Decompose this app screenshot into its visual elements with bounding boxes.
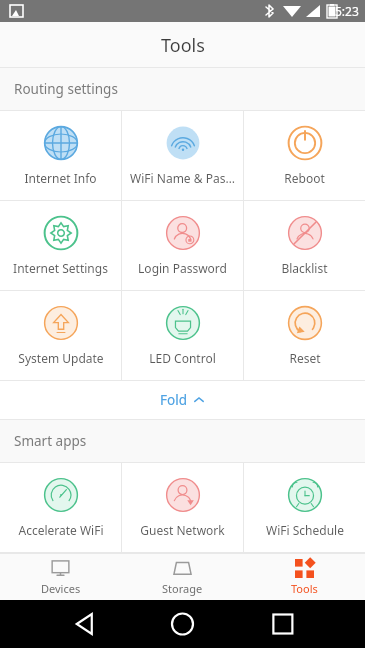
staticText: Devices xyxy=(41,581,81,596)
staticText: Accelerate WiFi xyxy=(18,522,104,538)
staticText: LED Control xyxy=(149,350,216,366)
button[interactable]: WiFi Schedule xyxy=(244,463,365,552)
staticText: Internet Settings xyxy=(13,260,108,276)
staticText: Guest Network xyxy=(140,522,225,538)
button[interactable]: Tools xyxy=(243,554,365,600)
button[interactable]: Reboot xyxy=(244,111,365,200)
button[interactable]: Reset xyxy=(244,291,365,380)
button[interactable]: Storage xyxy=(121,554,243,600)
button[interactable]: Devices xyxy=(0,554,121,600)
staticText: Tools xyxy=(161,33,205,58)
staticText: Internet Info xyxy=(24,170,97,186)
button[interactable]: Login Password xyxy=(122,201,243,290)
staticText: WiFi Schedule xyxy=(266,522,344,538)
staticText: Login Password xyxy=(138,260,227,276)
button[interactable]: Accelerate WiFi xyxy=(0,463,121,552)
staticText: Routing settings xyxy=(14,80,118,98)
button[interactable]: Blacklist xyxy=(244,201,365,290)
staticText: WiFi Name & Pas… xyxy=(130,170,235,186)
button[interactable]: System Update xyxy=(0,291,121,380)
staticText: Reset xyxy=(289,350,321,366)
button[interactable]: Fold xyxy=(0,381,365,419)
staticText: System Update xyxy=(18,350,104,366)
button[interactable]: LED Control xyxy=(122,291,243,380)
button[interactable]: Internet Info xyxy=(0,111,121,200)
button[interactable]: Guest Network xyxy=(122,463,243,552)
button[interactable]: WiFi Name & Pas… xyxy=(122,111,243,200)
button[interactable]: Internet Settings xyxy=(0,201,121,290)
staticText: Tools xyxy=(291,581,318,596)
staticText: 5:23 xyxy=(335,3,359,19)
staticText: Fold xyxy=(160,391,187,409)
staticText: Reboot xyxy=(284,170,325,186)
staticText: Storage xyxy=(162,581,203,596)
staticText: Smart apps xyxy=(14,432,87,450)
staticText: Blacklist xyxy=(281,260,328,276)
